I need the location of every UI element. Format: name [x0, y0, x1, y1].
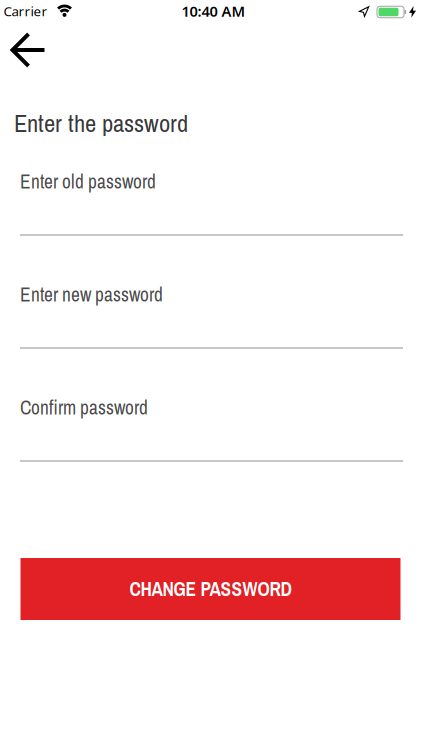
staticText: Enter the password — [14, 106, 188, 140]
staticText: Enter new password — [20, 281, 163, 307]
staticText: 10:40 AM — [181, 1, 245, 21]
button[interactable]: Back — [0, 27, 56, 73]
staticText: CHANGE PASSWORD — [129, 576, 291, 602]
button[interactable]: CHANGE PASSWORD — [20, 558, 400, 620]
staticText: Enter old password — [20, 168, 156, 194]
staticText: Confirm password — [20, 394, 148, 420]
staticText: Carrier — [3, 2, 47, 20]
